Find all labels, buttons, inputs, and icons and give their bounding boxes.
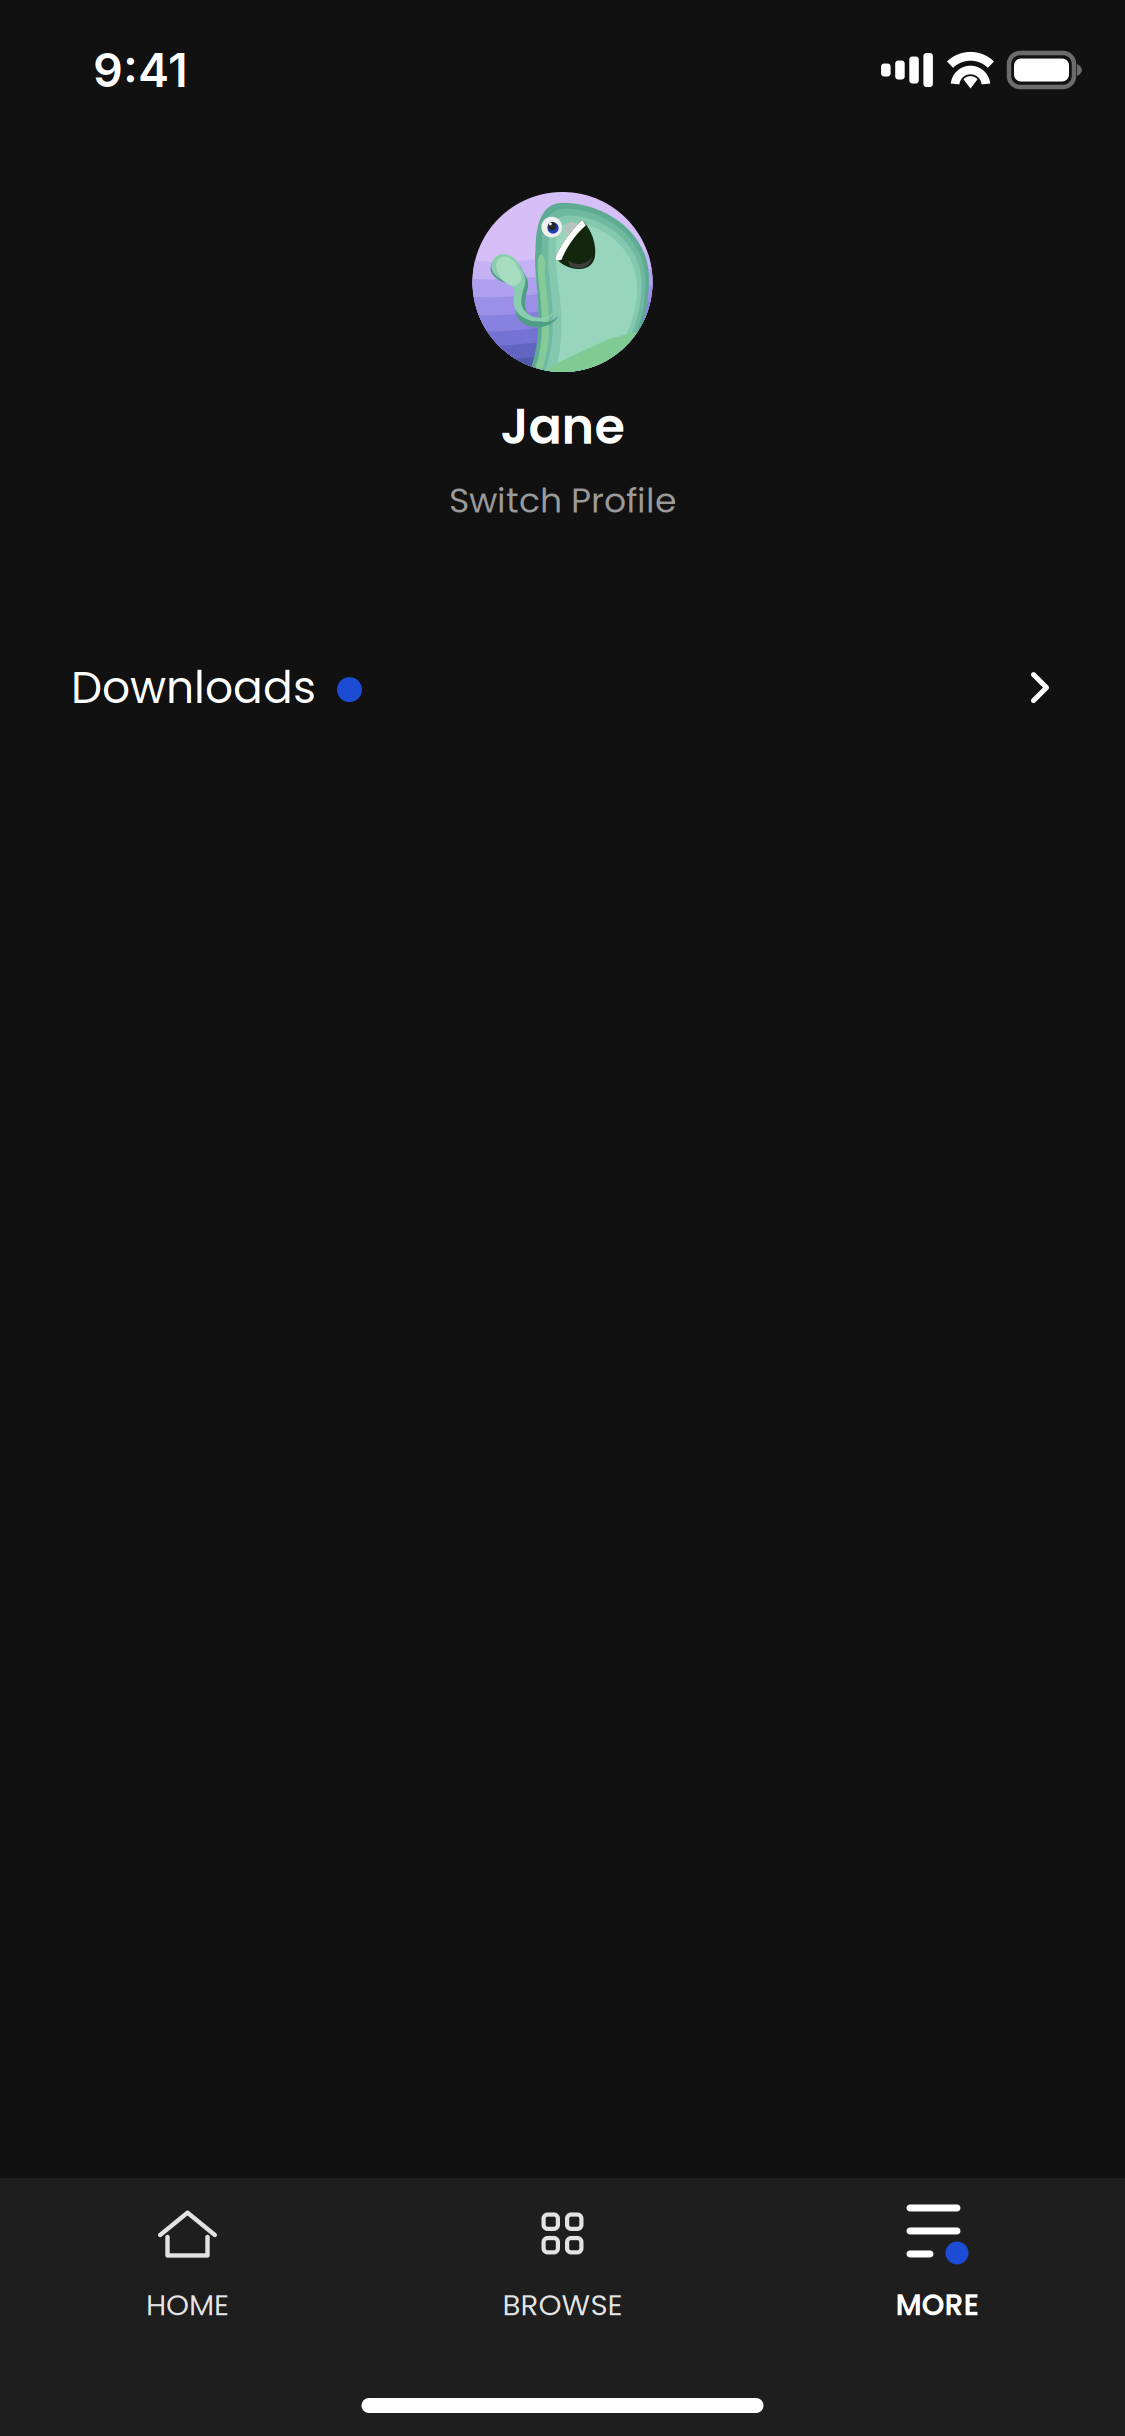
staticText: Downloads xyxy=(71,657,316,718)
button[interactable]: BROWSE xyxy=(375,2205,750,2321)
button[interactable]: HOME xyxy=(0,2205,375,2321)
button[interactable]: MORE xyxy=(750,2205,1125,2321)
staticText: BROWSE xyxy=(502,2284,622,2326)
staticText: Switch Profile xyxy=(449,476,676,525)
staticText: Jane xyxy=(500,392,624,461)
button[interactable]: Jane xyxy=(0,192,1125,525)
staticText: 9:41 xyxy=(93,42,188,98)
staticText: HOME xyxy=(146,2284,229,2326)
button[interactable]: Downloads xyxy=(0,636,1125,740)
staticText: MORE xyxy=(895,2284,979,2326)
